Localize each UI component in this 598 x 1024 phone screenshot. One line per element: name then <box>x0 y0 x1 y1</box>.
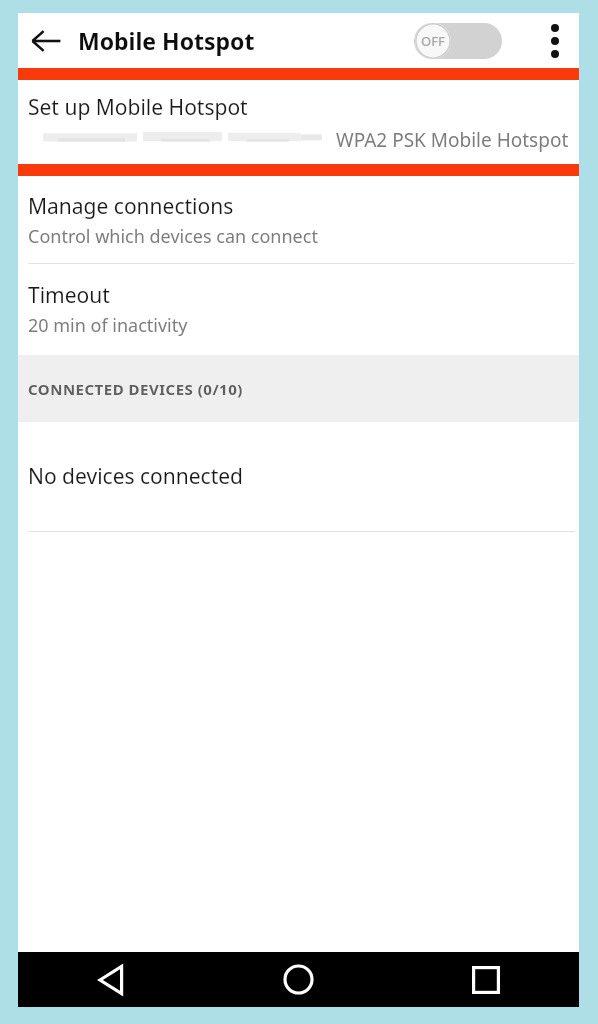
button[interactable]: Home <box>205 952 392 1007</box>
staticText: CONNECTED DEVICES (0/10) <box>28 379 243 399</box>
button[interactable]: No devices connected <box>18 422 579 531</box>
button[interactable]: Set up Mobile Hotspot <box>18 80 579 164</box>
button[interactable]: Back <box>18 952 205 1007</box>
button[interactable]: Manage connections <box>18 176 579 263</box>
button[interactable]: Back <box>22 17 70 65</box>
staticText: OFF <box>421 32 445 50</box>
staticText: 20 min of inactivity <box>28 313 188 338</box>
staticText: WPA2 PSK Mobile Hotspot <box>336 127 569 153</box>
button[interactable]: Timeout <box>18 264 579 355</box>
staticText: No devices connected <box>28 462 243 491</box>
button[interactable]: Recents <box>392 952 579 1007</box>
staticText: Manage connections <box>28 192 234 221</box>
button[interactable]: Mobile Hotspot toggle, off <box>406 16 510 66</box>
staticText: Set up Mobile Hotspot <box>28 93 248 122</box>
staticText: Timeout <box>28 281 110 310</box>
button[interactable]: More options <box>531 17 579 65</box>
staticText: Mobile Hotspot <box>78 25 255 56</box>
staticText: Control which devices can connect <box>28 224 318 249</box>
